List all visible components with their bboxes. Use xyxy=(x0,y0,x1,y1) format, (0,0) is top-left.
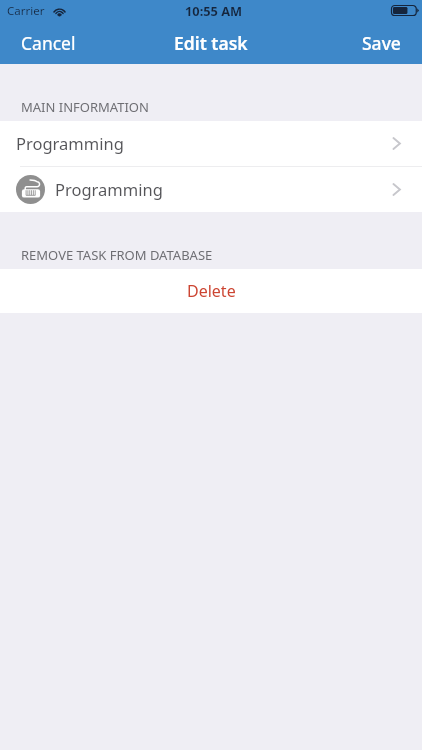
staticText: Save xyxy=(362,31,401,55)
staticText: 10:55 AM xyxy=(185,2,243,19)
button[interactable]: Delete xyxy=(0,269,422,313)
staticText: Delete xyxy=(187,280,236,302)
button[interactable]: Programming xyxy=(0,167,422,212)
staticText: MAIN INFORMATION xyxy=(21,98,149,116)
button[interactable]: Programming xyxy=(0,121,422,166)
button[interactable]: Save xyxy=(341,20,422,64)
staticText: Edit task xyxy=(174,31,248,55)
staticText: Programming xyxy=(55,178,163,200)
staticText: Programming xyxy=(16,132,124,154)
staticText: REMOVE TASK FROM DATABASE xyxy=(21,246,213,264)
button[interactable]: Cancel xyxy=(0,20,97,64)
staticText: Cancel xyxy=(21,31,76,55)
staticText: Carrier xyxy=(7,3,45,19)
